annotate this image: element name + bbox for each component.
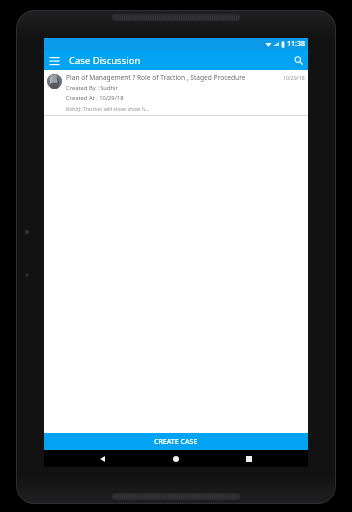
button[interactable]: CREATE CASE: [44, 433, 308, 450]
button[interactable]: Back: [94, 450, 111, 467]
staticText: 11:38: [287, 39, 305, 49]
staticText: Plan of Management ? Role of Traction , …: [66, 73, 246, 82]
staticText: Created At : 10/29/18: [66, 94, 124, 102]
staticText: RohitJ: Traction will show show h...: [66, 105, 150, 112]
staticText: CREATE CASE: [154, 437, 198, 447]
button[interactable]: Open navigation drawer: [44, 50, 64, 70]
staticText: 10/29/18: [283, 74, 305, 81]
button[interactable]: Recent apps: [240, 450, 257, 467]
button[interactable]: Home: [167, 450, 184, 467]
staticText: Case Discussion: [69, 54, 141, 67]
button[interactable]: Search: [288, 50, 308, 70]
button[interactable]: Plan of Management ? Role of Traction , …: [44, 70, 308, 116]
staticText: Created By : Sudhir: [66, 84, 118, 92]
